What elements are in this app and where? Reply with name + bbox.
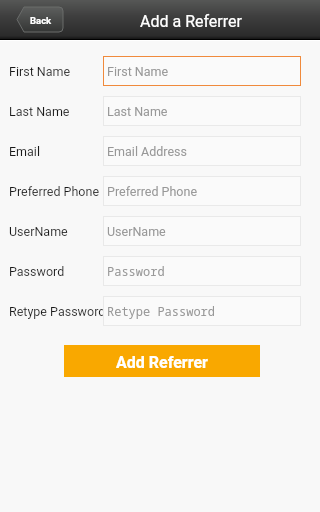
staticText: Password [9, 264, 65, 279]
staticText: First Name [9, 64, 71, 79]
staticText: UserName [107, 224, 166, 239]
button[interactable]: Email Address [103, 136, 301, 166]
staticText: Preferred Phone [107, 184, 198, 199]
button[interactable]: Back [17, 7, 63, 32]
staticText: Password [107, 263, 165, 279]
button[interactable]: Retype Password [103, 296, 301, 326]
button[interactable]: Password [103, 256, 301, 286]
button[interactable]: First Name [103, 56, 301, 86]
staticText: Add Referrer [116, 353, 208, 372]
staticText: Back [30, 15, 52, 26]
staticText: Last Name [9, 104, 70, 119]
button[interactable]: Preferred Phone [103, 176, 301, 206]
staticText: Retype Password [107, 303, 216, 319]
staticText: First Name [107, 64, 169, 79]
button[interactable]: UserName [103, 216, 301, 246]
button[interactable]: Add Referrer [64, 345, 260, 377]
staticText: Last Name [107, 104, 168, 119]
staticText: Email Address [107, 144, 187, 159]
staticText: UserName [9, 224, 68, 239]
button[interactable]: Last Name [103, 96, 301, 126]
staticText: Retype Password [9, 304, 106, 319]
staticText: Email [9, 144, 40, 159]
staticText: Add a Referrer [140, 12, 242, 31]
staticText: Preferred Phone [9, 184, 100, 199]
